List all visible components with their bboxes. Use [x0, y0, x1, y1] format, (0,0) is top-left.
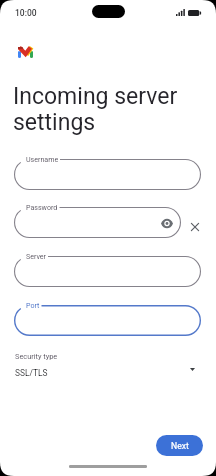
staticText: Next [171, 441, 189, 451]
staticText: Server [26, 252, 46, 260]
staticText: Security type [15, 352, 58, 361]
staticText: Username [26, 155, 59, 163]
button[interactable]: Show password [160, 216, 174, 230]
button[interactable]: Security type [15, 349, 196, 381]
button[interactable]: Next [156, 435, 203, 456]
staticText: Password [26, 203, 58, 211]
staticText: Incoming server settings [13, 83, 178, 135]
staticText: 10:00 [15, 8, 37, 18]
staticText: Port [26, 301, 40, 309]
button[interactable]: Clear password [187, 219, 203, 235]
staticText: SSL/TLS [15, 368, 48, 378]
